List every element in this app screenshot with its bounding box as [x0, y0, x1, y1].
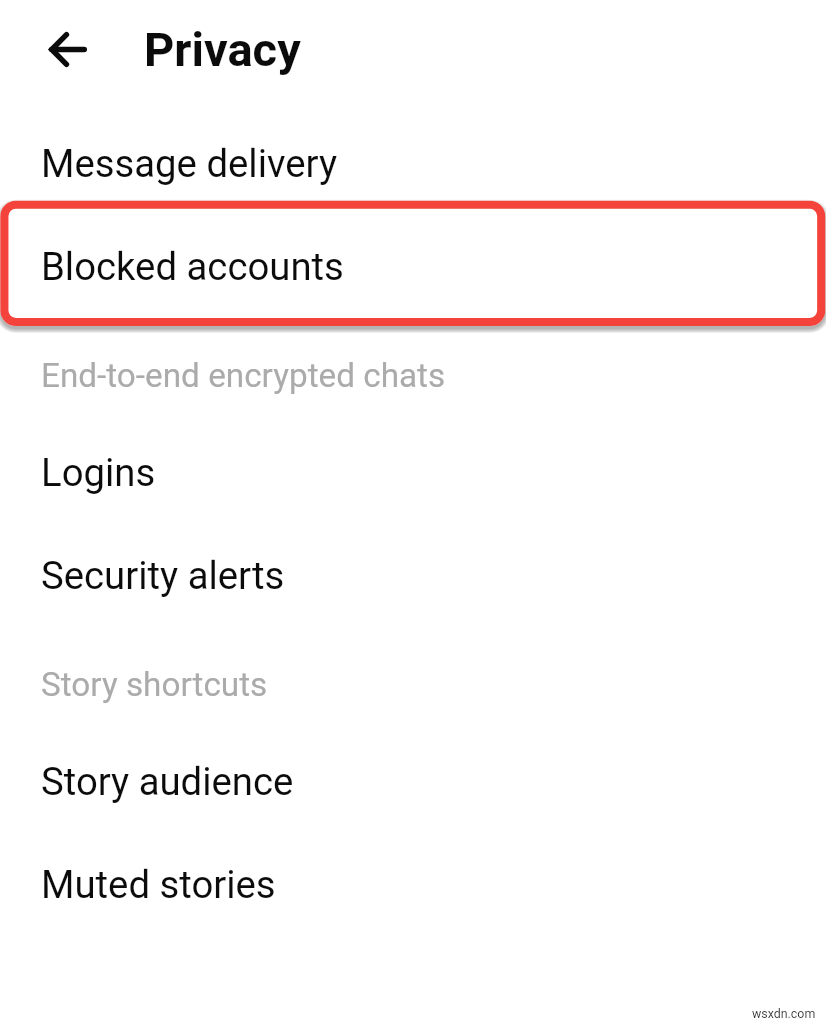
button[interactable]: Story shortcuts	[0, 627, 826, 730]
button[interactable]: Message delivery	[0, 112, 826, 215]
staticText: End-to-end encrypted chats	[41, 356, 446, 395]
button[interactable]: End-to-end encrypted chats	[0, 318, 826, 421]
staticText: Logins	[41, 450, 156, 495]
staticText: Security alerts	[41, 553, 285, 598]
staticText: Story audience	[41, 759, 294, 804]
button[interactable]: Muted stories	[0, 833, 826, 936]
button[interactable]: Blocked accounts	[0, 215, 826, 318]
staticText: Privacy	[144, 22, 301, 77]
staticText: Muted stories	[41, 862, 276, 907]
button[interactable]: Story audience	[0, 730, 826, 833]
button[interactable]: Security alerts	[0, 524, 826, 627]
staticText: Story shortcuts	[41, 665, 268, 704]
staticText: Blocked accounts	[41, 244, 344, 289]
staticText: Message delivery	[41, 141, 337, 186]
button[interactable]: Back	[25, 6, 111, 92]
button[interactable]: Logins	[0, 421, 826, 524]
staticText: wsxdn.com	[752, 1006, 816, 1021]
